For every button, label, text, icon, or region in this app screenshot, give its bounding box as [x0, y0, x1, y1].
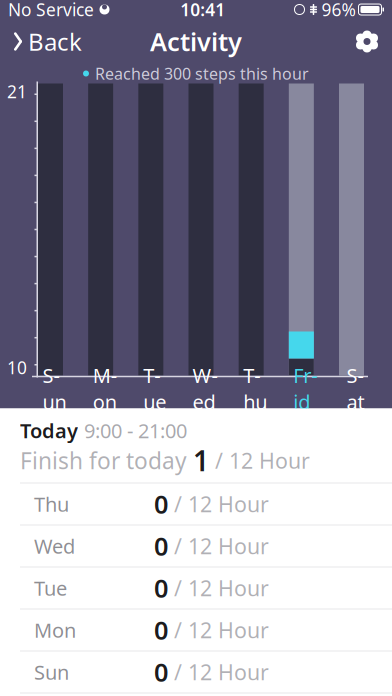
staticText: 0: [154, 571, 168, 605]
staticText: Finish for today: [20, 445, 193, 475]
staticText: Wed: [34, 533, 75, 559]
staticText: 0: [154, 613, 168, 647]
staticText: Wed: [192, 362, 217, 415]
button[interactable]: Tue: [0, 567, 392, 609]
button[interactable]: Mon: [0, 609, 392, 651]
staticText: Activity: [150, 25, 242, 58]
staticText: / 12 Hour: [168, 658, 269, 686]
staticText: Thu: [243, 362, 267, 415]
staticText: / 12 Hour: [168, 532, 269, 560]
button[interactable]: Settings: [342, 19, 392, 63]
staticText: Sun: [42, 362, 66, 415]
staticText: Frid: [293, 362, 317, 415]
staticText: 0: [154, 529, 168, 563]
staticText: 10: [7, 356, 27, 379]
staticText: Today: [20, 417, 78, 444]
staticText: / 12 Hour: [168, 616, 269, 644]
staticText: 0: [154, 655, 168, 689]
staticText: Tue: [34, 575, 67, 601]
staticText: Reached 300 steps this hour: [95, 63, 309, 84]
staticText: 10:41: [180, 0, 225, 21]
staticText: Thu: [34, 491, 69, 517]
staticText: / 12 Hour: [168, 490, 269, 518]
staticText: 9:00 - 21:00: [84, 417, 187, 444]
button[interactable]: Thu: [0, 483, 392, 525]
staticText: Sun: [34, 659, 69, 685]
staticText: Mon: [34, 617, 76, 643]
button[interactable]: Sun: [0, 651, 392, 693]
staticText: / 12 Hour: [168, 574, 269, 602]
staticText: 96%: [321, 0, 355, 21]
staticText: / 12 Hour: [209, 446, 310, 475]
staticText: Sat: [346, 362, 364, 415]
staticText: 1: [193, 442, 209, 479]
staticText: 21: [7, 80, 27, 103]
staticText: Mon: [93, 362, 117, 415]
staticText: Tue: [143, 362, 166, 415]
staticText: No Service: [8, 0, 94, 21]
staticText: Back: [28, 26, 82, 57]
button[interactable]: Back: [0, 19, 94, 63]
button[interactable]: Wed: [0, 525, 392, 567]
staticText: 0: [154, 487, 168, 521]
